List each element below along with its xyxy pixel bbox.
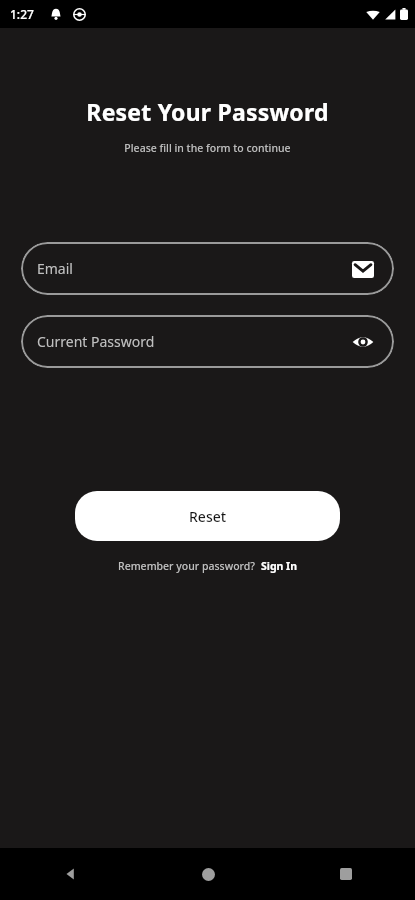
button[interactable]: Email [21, 242, 394, 295]
staticText: Reset Your Password [0, 96, 415, 127]
button[interactable]: Reset [75, 491, 340, 541]
button[interactable]: Recent apps [277, 848, 415, 900]
button[interactable]: Email [348, 254, 378, 284]
staticText: Please fill in the form to continue [0, 141, 415, 155]
staticText: 1:27 [10, 6, 34, 22]
button[interactable]: Back [0, 848, 139, 900]
button[interactable]: Show password [348, 327, 378, 357]
staticText: Sign In [261, 559, 298, 573]
staticText: Current Password [37, 332, 348, 351]
staticText: Remember your password? [118, 559, 256, 573]
staticText: Email [37, 259, 348, 278]
button[interactable]: Current Password [21, 315, 394, 368]
button[interactable]: Sign In [261, 559, 298, 573]
button[interactable]: Home [139, 848, 277, 900]
staticText: Reset [189, 507, 227, 526]
